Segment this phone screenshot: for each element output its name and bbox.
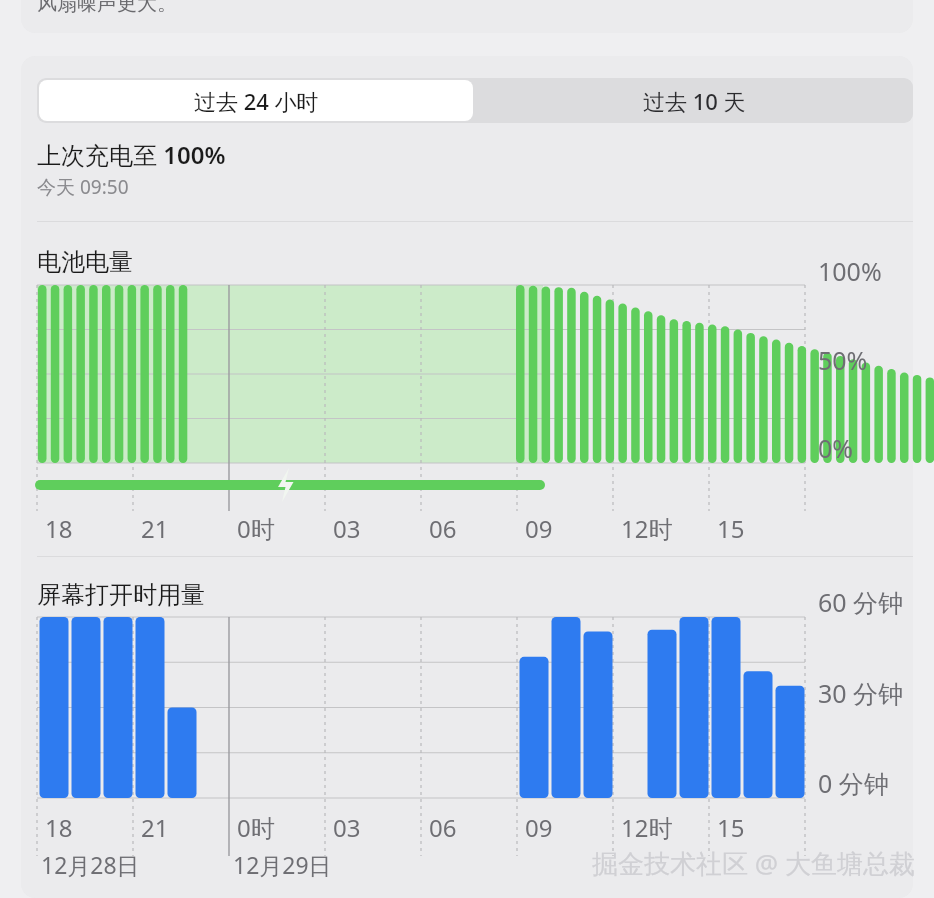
staticText: 屏幕打开时用量 — [37, 580, 205, 610]
staticText: 电池电量 — [37, 247, 133, 277]
staticText: 0 分钟 — [818, 766, 889, 800]
staticText: 09 — [525, 512, 553, 545]
staticText: 12月29日 — [233, 849, 332, 880]
staticText: 18 — [45, 811, 73, 844]
staticText: 21 — [141, 811, 169, 844]
staticText: 60 分钟 — [818, 585, 904, 619]
staticText: 15 — [717, 512, 745, 545]
staticText: 50% — [818, 343, 868, 377]
staticText: 过去 10 天 — [643, 86, 746, 116]
staticText: 06 — [429, 811, 457, 844]
staticText: 09 — [525, 811, 553, 844]
staticText: 06 — [429, 512, 457, 545]
staticText: 12时 — [621, 512, 673, 545]
button[interactable]: 过去 24 小时 — [39, 80, 473, 121]
staticText: 风扇噪声更大。 — [37, 0, 177, 16]
staticText: 15 — [717, 811, 745, 844]
staticText: 30 分钟 — [818, 676, 904, 710]
staticText: 今天 09:50 — [37, 174, 129, 200]
staticText: 过去 24 小时 — [194, 86, 319, 116]
staticText: 18 — [45, 512, 73, 545]
staticText: 0% — [818, 431, 854, 465]
staticText: 03 — [333, 512, 361, 545]
staticText: 12月28日 — [41, 849, 140, 880]
staticText: 12时 — [621, 811, 673, 844]
staticText: 21 — [141, 512, 169, 545]
staticText: 0时 — [237, 811, 275, 844]
staticText: 掘金技术社区 @ 大鱼塘总裁 — [592, 845, 915, 881]
button[interactable]: 过去 10 天 — [475, 78, 913, 123]
staticText: 上次充电至 100% — [37, 138, 226, 171]
staticText: 0时 — [237, 512, 275, 545]
staticText: 100% — [818, 254, 882, 288]
staticText: 03 — [333, 811, 361, 844]
